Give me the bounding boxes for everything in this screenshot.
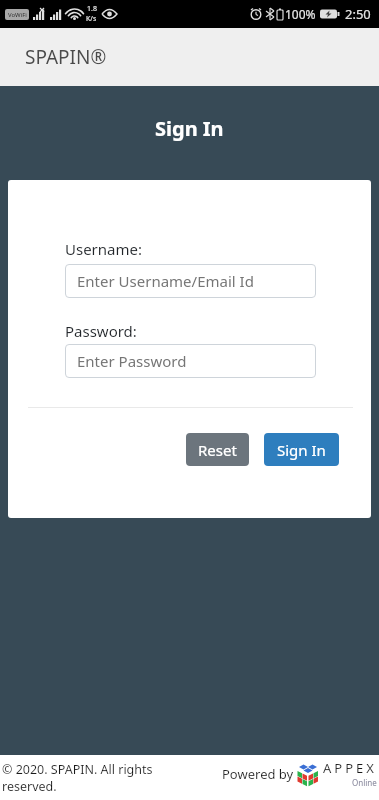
staticText: 1.8: [87, 4, 97, 14]
button[interactable]: Reset: [186, 433, 249, 466]
staticText: 100%: [285, 6, 316, 22]
staticText: Sign In: [277, 440, 326, 460]
staticText: VoWiFi: [8, 11, 27, 19]
staticText: Password:: [65, 321, 137, 341]
staticText: reserved.: [2, 778, 57, 795]
staticText: Online: [352, 777, 377, 788]
button[interactable]: Sign In: [264, 433, 339, 466]
button[interactable]: SPAPIN®: [0, 28, 379, 86]
button[interactable]: Enter Password: [65, 344, 316, 378]
staticText: Username:: [65, 239, 142, 259]
staticText: Powered by: [222, 765, 297, 783]
staticText: © 2020. SPAPIN. All rights: [2, 761, 153, 778]
button[interactable]: [297, 763, 319, 784]
staticText: Reset: [198, 440, 237, 460]
staticText: Sign In: [155, 115, 224, 142]
button[interactable]: Enter Username/Email Id: [65, 264, 316, 298]
staticText: SPAPIN®: [25, 44, 107, 70]
staticText: Enter Password: [77, 351, 187, 371]
staticText: K/s: [86, 14, 97, 24]
staticText: APPEX: [323, 759, 377, 777]
staticText: Enter Username/Email Id: [77, 271, 254, 291]
staticText: 2:50: [345, 5, 371, 23]
